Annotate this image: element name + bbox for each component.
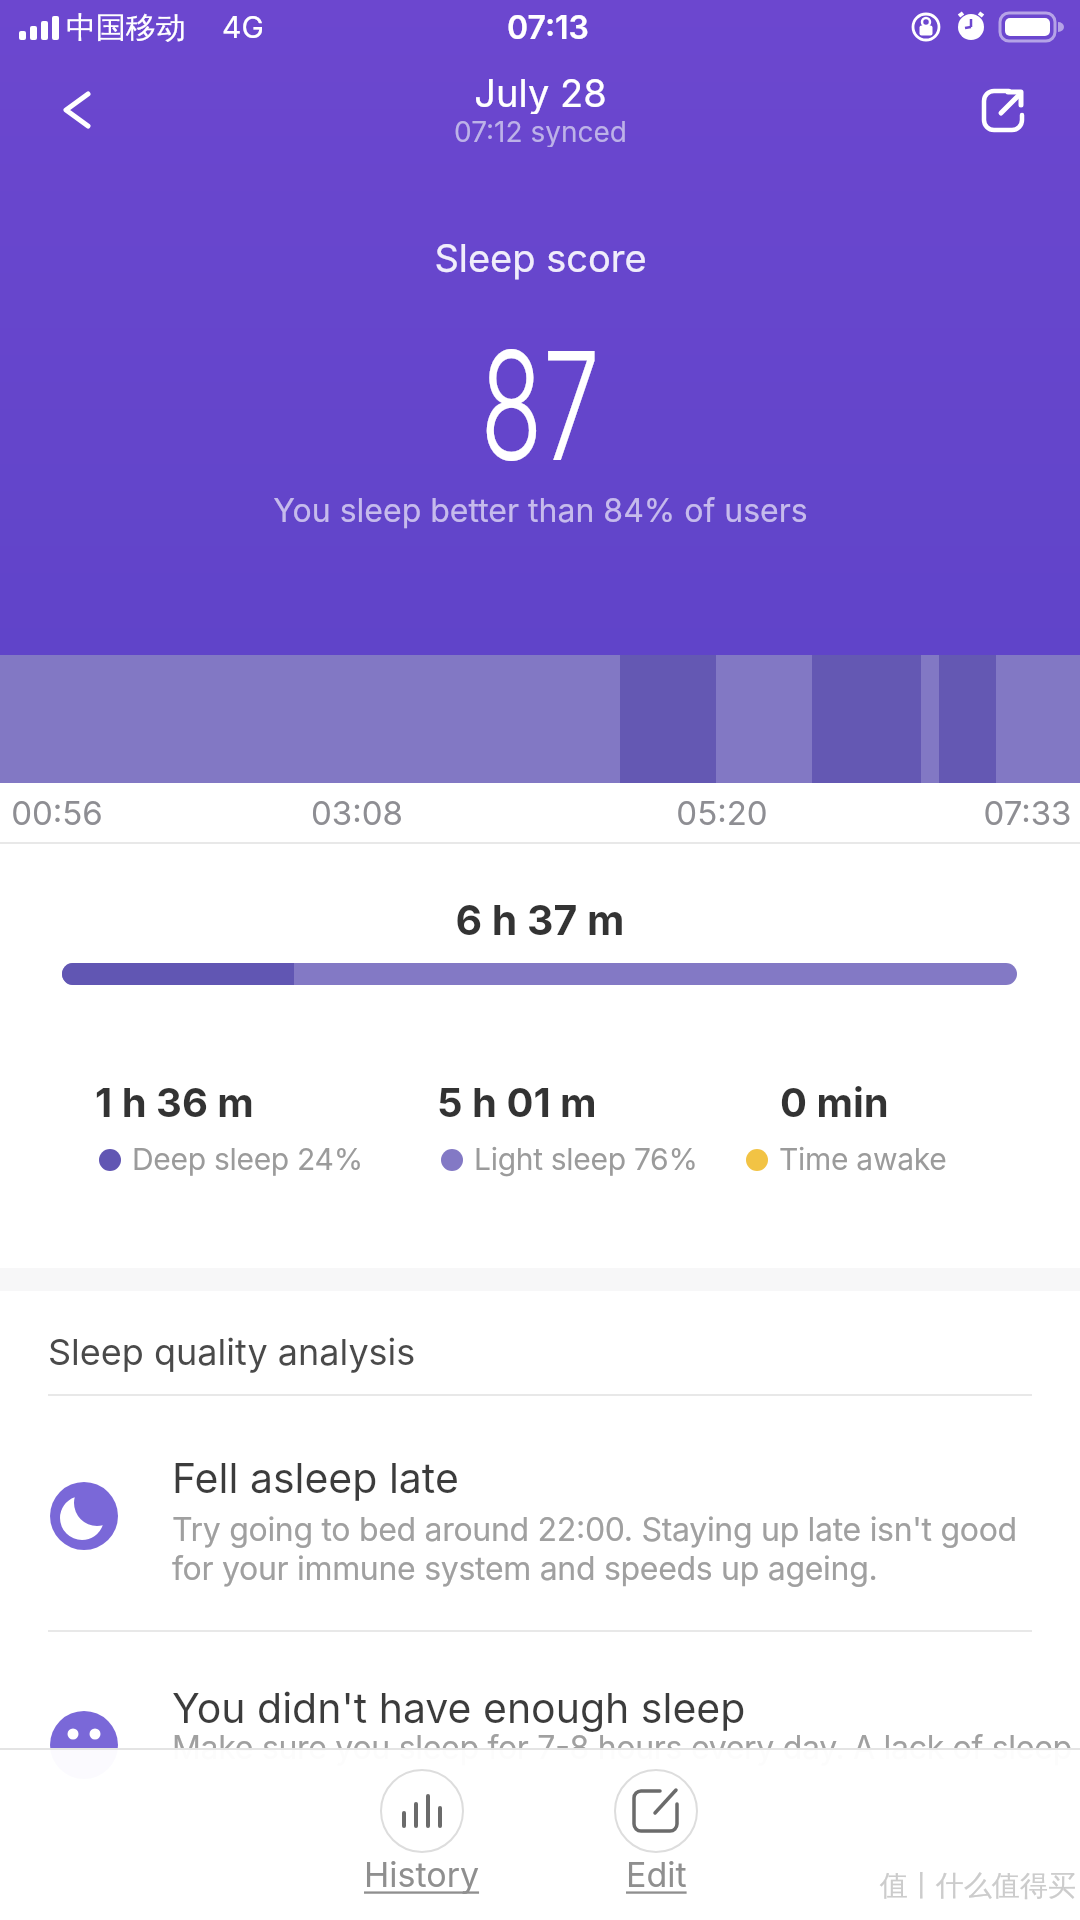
staticText: Deep sleep 24% <box>132 1141 363 1177</box>
staticText: Try going to bed around 22:00. Staying u… <box>172 1510 1017 1588</box>
staticText: Time awake <box>779 1141 947 1177</box>
staticText: Edit <box>626 1854 687 1895</box>
staticText: You sleep better than 84% of users <box>273 491 808 530</box>
staticText: 1 h 36 m <box>95 1078 254 1126</box>
staticText: July 28 <box>474 70 607 114</box>
button[interactable]: Edit <box>576 1766 736 1900</box>
staticText: 05:20 <box>676 793 768 833</box>
staticText: 5 h 01 m <box>437 1078 597 1126</box>
staticText: 87 <box>480 315 600 461</box>
staticText: 0 min <box>780 1078 889 1126</box>
staticText: 03:08 <box>311 793 403 833</box>
button[interactable] <box>40 80 104 140</box>
staticText: 值丨什么值得买 <box>880 1868 1076 1903</box>
staticText: 07:33 <box>983 793 1072 833</box>
staticText: Fell asleep late <box>172 1453 459 1503</box>
staticText: Make sure you sleep for 7-8 hours every … <box>172 1728 1072 1767</box>
staticText: 07:12 synced <box>454 115 627 147</box>
staticText: History <box>364 1854 480 1895</box>
staticText: 6 h 37 m <box>455 895 625 941</box>
staticText: 00:56 <box>11 793 103 833</box>
staticText: 07:13 <box>507 8 589 47</box>
staticText: Sleep score <box>434 235 647 281</box>
button[interactable]: You didn't have enough sleep <box>48 1680 1032 1840</box>
button[interactable] <box>968 76 1036 142</box>
staticText: 4G <box>222 9 264 45</box>
staticText: Light sleep 76% <box>474 1141 698 1177</box>
staticText: You didn't have enough sleep <box>172 1683 746 1733</box>
staticText: 中国移动 <box>66 9 186 47</box>
button[interactable]: History <box>342 1766 502 1900</box>
staticText: Sleep quality analysis <box>48 1330 416 1374</box>
button[interactable]: Fell asleep late <box>48 1450 1032 1620</box>
